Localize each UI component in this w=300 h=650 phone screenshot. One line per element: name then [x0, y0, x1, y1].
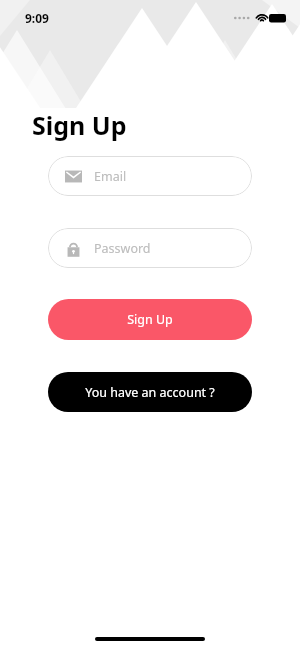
staticText: Sign Up	[127, 311, 173, 328]
button[interactable]: Password	[48, 228, 252, 268]
button[interactable]: Sign Up	[48, 299, 252, 340]
staticText: You have an account ?	[85, 384, 215, 401]
staticText: 9:09	[25, 10, 49, 26]
staticText: Email	[94, 168, 127, 185]
staticText: Sign Up	[32, 108, 127, 142]
other: Email	[65, 168, 82, 185]
other: Password	[65, 240, 82, 257]
button[interactable]: You have an account ?	[48, 372, 252, 412]
button[interactable]: Email	[48, 156, 252, 196]
staticText: Password	[94, 240, 151, 257]
